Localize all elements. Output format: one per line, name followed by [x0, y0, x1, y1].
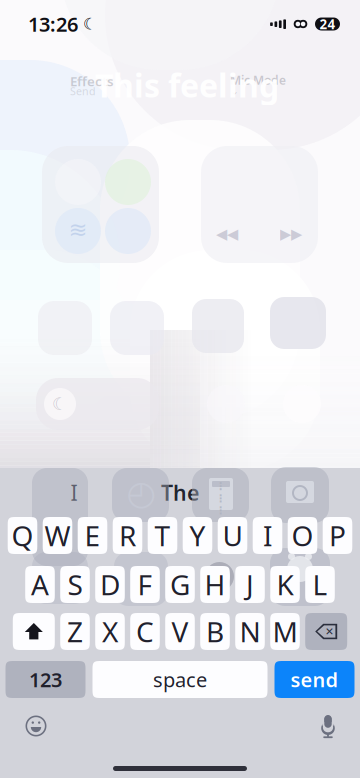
staticText: Q: [11, 517, 33, 554]
staticText: send: [290, 666, 338, 693]
button[interactable]: U: [218, 517, 247, 554]
button[interactable]: Z: [60, 613, 90, 650]
staticText: ◀◀: [216, 226, 238, 242]
staticText: Effects: [70, 72, 114, 90]
staticText: The: [161, 478, 199, 507]
button[interactable]: Suggestion: [232, 468, 340, 517]
staticText: S: [67, 566, 82, 603]
staticText: Mic Mode: [230, 72, 286, 88]
staticText: F: [137, 566, 152, 603]
button[interactable]: S: [60, 566, 90, 603]
staticText: M: [272, 613, 297, 650]
button[interactable]: J: [235, 566, 265, 603]
button[interactable]: A: [25, 566, 55, 603]
staticText: ⋮⋮⋮: [215, 480, 226, 517]
staticText: Z: [67, 613, 83, 650]
button[interactable]: F: [130, 566, 160, 603]
button[interactable]: T: [148, 517, 177, 554]
staticText: Send: [70, 84, 96, 98]
staticText: I: [263, 517, 272, 554]
staticText: J: [246, 566, 254, 603]
button[interactable]: R: [113, 517, 142, 554]
staticText: U: [222, 517, 242, 554]
button[interactable]: Shift: [13, 613, 55, 650]
staticText: ✕: [325, 625, 334, 637]
staticText: C: [136, 613, 154, 650]
staticText: X: [102, 613, 118, 650]
button[interactable]: B: [200, 613, 230, 650]
staticText: ⌄: [230, 85, 239, 97]
button[interactable]: K: [270, 566, 300, 603]
button[interactable]: I: [20, 468, 128, 517]
staticText: ≋: [68, 217, 87, 243]
staticText: N: [239, 613, 260, 650]
staticText: L: [312, 566, 327, 603]
staticText: T: [154, 517, 170, 554]
staticText: V: [171, 613, 188, 650]
staticText: [283, 478, 289, 507]
staticText: space: [153, 666, 207, 693]
button[interactable]: Dictate: [318, 713, 338, 739]
button[interactable]: W: [43, 517, 72, 554]
button[interactable]: P: [323, 517, 352, 554]
staticText: ☾: [78, 15, 97, 33]
staticText: D: [100, 566, 120, 603]
button[interactable]: space: [92, 661, 267, 698]
staticText: E: [84, 517, 100, 554]
button[interactable]: send: [274, 661, 354, 698]
staticText: P: [329, 517, 346, 554]
staticText: ☾: [52, 394, 68, 414]
button[interactable]: C: [130, 613, 160, 650]
button[interactable]: L: [305, 566, 335, 603]
staticText: H: [204, 566, 225, 603]
button[interactable]: The: [128, 468, 232, 517]
button[interactable]: Q: [8, 517, 37, 554]
button[interactable]: N: [235, 613, 265, 650]
staticText: A: [31, 566, 49, 603]
button[interactable]: V: [165, 613, 195, 650]
button[interactable]: H: [200, 566, 230, 603]
button[interactable]: I: [253, 517, 282, 554]
staticText: 24: [319, 15, 335, 33]
staticText: This feeling: [95, 64, 279, 106]
button[interactable]: X: [95, 613, 125, 650]
staticText: 123: [29, 666, 62, 693]
button[interactable]: M: [270, 613, 300, 650]
staticText: G: [170, 566, 190, 603]
staticText: 13:26: [28, 11, 78, 37]
staticText: R: [119, 517, 136, 554]
staticText: ▶▶: [280, 226, 302, 242]
staticText: O: [291, 517, 313, 554]
staticText: Y: [189, 517, 205, 554]
button[interactable]: D: [95, 566, 125, 603]
button[interactable]: Emoji keyboard: [25, 715, 47, 737]
button[interactable]: G: [165, 566, 195, 603]
staticText: I: [70, 478, 77, 507]
button[interactable]: Y: [183, 517, 212, 554]
staticText: K: [276, 566, 293, 603]
button[interactable]: Delete: [305, 613, 347, 650]
staticText: B: [206, 613, 224, 650]
staticText: W: [44, 517, 70, 554]
button[interactable]: 123: [5, 661, 85, 698]
button[interactable]: O: [288, 517, 317, 554]
button[interactable]: E: [78, 517, 107, 554]
